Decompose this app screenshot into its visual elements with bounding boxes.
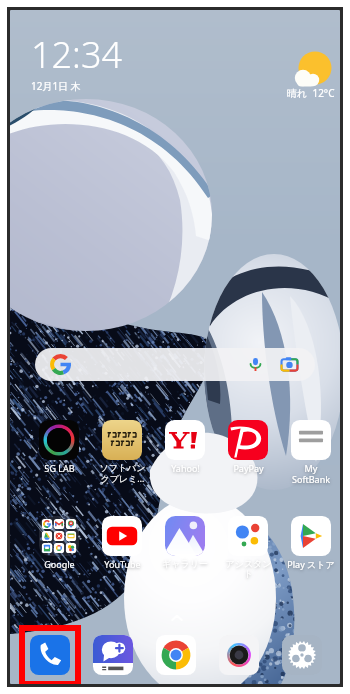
staticText: ソフトバン クプレミ…: [99, 462, 146, 484]
button[interactable]: アシスタン ト: [219, 516, 277, 580]
staticText: 12:34: [31, 30, 123, 79]
button[interactable]: ギャラリー: [156, 516, 214, 569]
staticText: 晴れ 12°C: [287, 86, 335, 100]
staticText: Google: [44, 558, 75, 570]
button[interactable]: ソフトバン クプレミ…: [93, 420, 151, 484]
button[interactable]: Google: [30, 516, 88, 570]
staticText: 12月1日 木: [31, 79, 81, 93]
staticText: PayPay: [233, 462, 264, 474]
staticText: Yahoo!: [171, 462, 200, 474]
button[interactable]: Camera: [219, 635, 259, 675]
button[interactable]: My SoftBank: [282, 420, 340, 485]
staticText: Play ストア: [287, 558, 335, 570]
staticText: 5G LAB: [44, 462, 75, 474]
button[interactable]: SoftBank Mail: [93, 635, 133, 675]
button[interactable]: PayPay: [219, 420, 277, 474]
staticText: My SoftBank: [292, 462, 330, 485]
button[interactable]: Chrome: [156, 635, 196, 675]
staticText: アシスタン ト: [225, 558, 272, 580]
button[interactable]: Play ストア: [282, 516, 340, 570]
button[interactable]: Phone: [30, 635, 70, 675]
button[interactable]: Yahoo!: [156, 420, 214, 474]
button[interactable]: [35, 348, 315, 381]
staticText: YouTube: [104, 558, 141, 570]
button[interactable]: Settings: [282, 635, 322, 675]
button[interactable]: YouTube: [93, 516, 151, 570]
button[interactable]: 5G LAB: [30, 420, 88, 474]
staticText: ギャラリー: [162, 558, 208, 569]
